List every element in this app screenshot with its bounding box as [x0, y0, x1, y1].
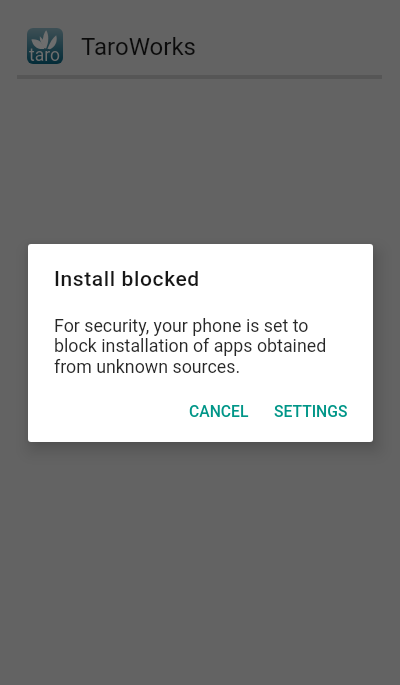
button[interactable]: TaroWorks app icon	[15, 18, 208, 74]
staticText: TaroWorks	[81, 33, 196, 61]
staticText: For security, your phone is set to block…	[54, 315, 346, 378]
staticText: taro	[29, 45, 60, 64]
staticText: CANCEL	[189, 402, 249, 420]
staticText: Install blocked	[54, 267, 200, 292]
staticText: SETTINGS	[274, 402, 348, 420]
other: TaroWorks app icon	[27, 28, 63, 64]
button[interactable]: SETTINGS	[266, 394, 356, 428]
button[interactable]: CANCEL	[181, 394, 257, 428]
